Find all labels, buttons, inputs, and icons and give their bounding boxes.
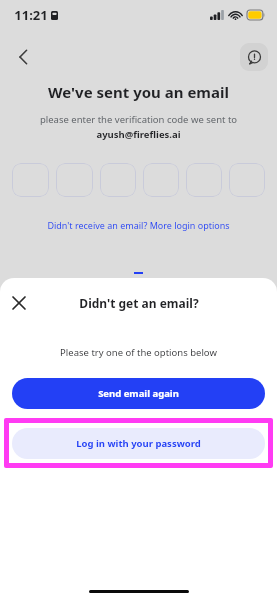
staticText: Didn't get an email? bbox=[79, 295, 199, 311]
button[interactable] bbox=[143, 163, 179, 197]
staticText: Didn't receive an email? More login opti… bbox=[47, 219, 230, 231]
button[interactable]: Close bbox=[6, 290, 32, 316]
staticText: We've sent you an email bbox=[48, 82, 229, 102]
button[interactable] bbox=[56, 163, 93, 197]
button[interactable] bbox=[186, 163, 222, 197]
button[interactable]: Help bbox=[240, 43, 268, 71]
button[interactable] bbox=[100, 163, 136, 197]
staticText: Log in with your password bbox=[76, 437, 201, 450]
button[interactable] bbox=[229, 163, 265, 197]
button[interactable]: Didn't receive an email? More login opti… bbox=[43, 217, 234, 233]
button[interactable]: Log in with your password bbox=[12, 428, 265, 459]
staticText: Please try one of the options below bbox=[60, 346, 217, 359]
button[interactable]: Send email again bbox=[12, 378, 265, 409]
button[interactable] bbox=[12, 163, 49, 197]
staticText: Send email again bbox=[98, 387, 179, 400]
staticText: 11:21 bbox=[14, 6, 48, 24]
button[interactable]: Back bbox=[8, 42, 38, 72]
staticText: please enter the verification code we se… bbox=[16, 113, 261, 141]
